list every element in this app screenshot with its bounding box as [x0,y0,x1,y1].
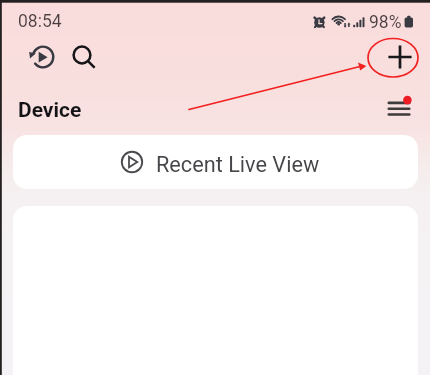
staticText: 98% [369,12,402,33]
button[interactable]: Recent Live View [13,135,418,189]
button[interactable]: Add device [378,35,422,79]
staticText: 08:54 [18,11,62,32]
button[interactable]: Search [64,37,100,73]
staticText: Device [18,98,82,123]
button[interactable]: Playback [25,39,61,75]
button[interactable]: Menu [381,90,417,126]
staticText: Recent Live View [156,152,320,177]
